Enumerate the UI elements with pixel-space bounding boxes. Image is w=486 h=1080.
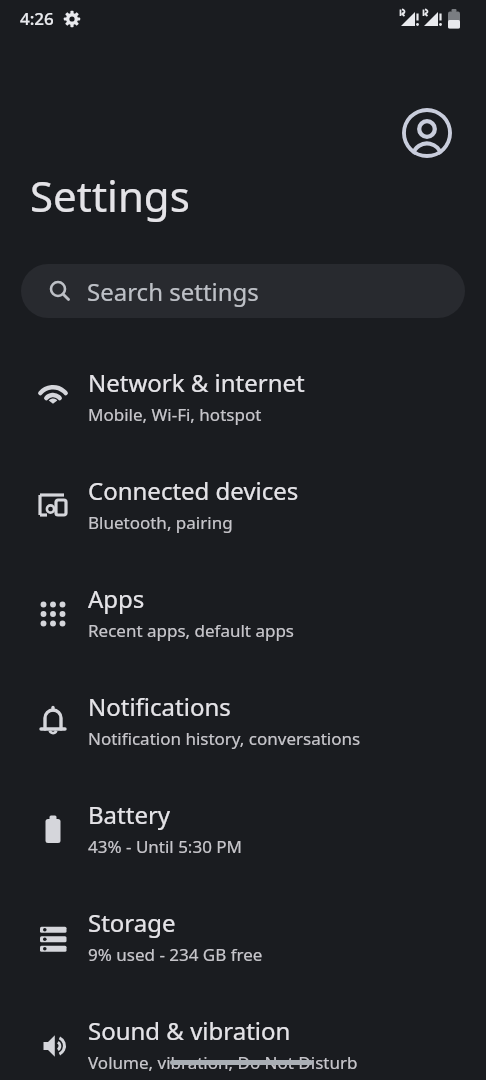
staticText: 43% - Until 5:30 PM <box>88 835 243 858</box>
button[interactable]: Connected devices <box>0 452 486 560</box>
staticText: Sound & vibration <box>88 1014 291 1047</box>
staticText: Notification history, conversations <box>88 727 361 750</box>
staticText: Connected devices <box>88 474 299 507</box>
staticText: Settings <box>30 167 190 224</box>
button[interactable]: Sound & vibration <box>0 992 486 1080</box>
button[interactable]: Notifications <box>0 668 486 776</box>
staticText: Notifications <box>88 690 231 723</box>
staticText: Storage <box>88 906 176 939</box>
staticText: Search settings <box>87 275 259 308</box>
button[interactable] <box>402 108 452 158</box>
staticText: Recent apps, default apps <box>88 619 295 642</box>
staticText: Volume, vibration, Do Not Disturb <box>88 1051 358 1074</box>
staticText: 9% used - 234 GB free <box>88 943 263 966</box>
staticText: Network & internet <box>88 366 305 399</box>
staticText: Battery <box>88 798 171 831</box>
staticText: 4:26 <box>20 7 54 30</box>
staticText: Mobile, Wi-Fi, hotspot <box>88 403 262 426</box>
button[interactable]: Apps <box>0 560 486 668</box>
button[interactable]: Battery <box>0 776 486 884</box>
button[interactable]: Storage <box>0 884 486 992</box>
button[interactable]: Network & internet <box>0 344 486 452</box>
button[interactable]: Search settings <box>21 264 465 318</box>
staticText: Apps <box>88 582 145 615</box>
staticText: Bluetooth, pairing <box>88 511 233 534</box>
